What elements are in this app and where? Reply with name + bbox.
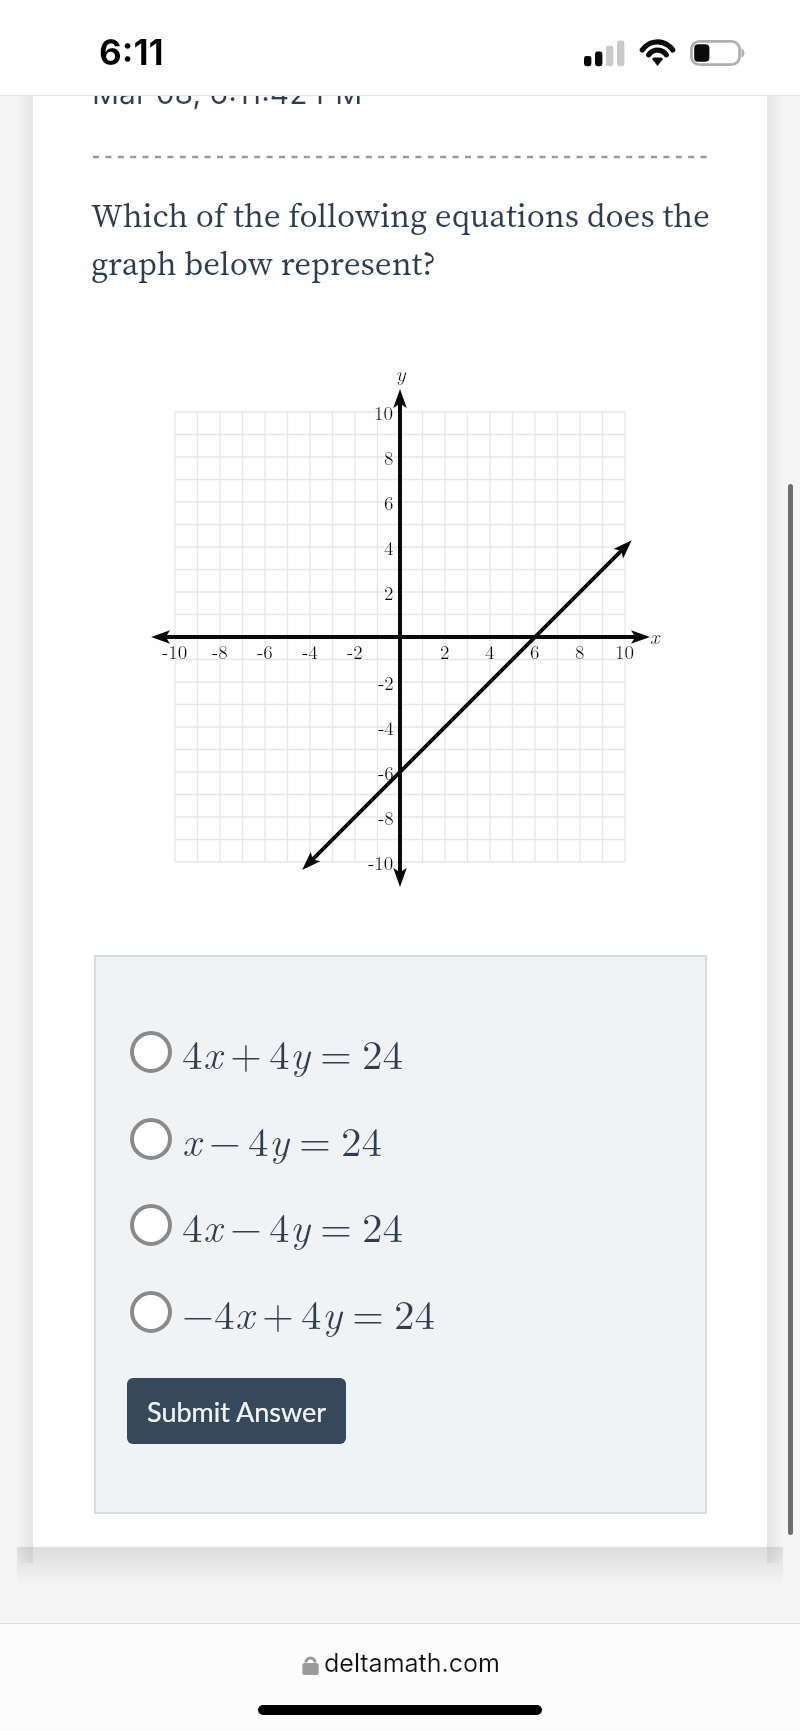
staticText: y — [322, 1283, 342, 1341]
staticText: 4 — [182, 1023, 203, 1081]
staticText: deltamath.com — [324, 1648, 500, 1678]
other: Home indicator — [258, 1705, 542, 1715]
staticText: + — [230, 1023, 262, 1081]
staticText: 4 — [301, 1283, 322, 1341]
staticText: = — [320, 1023, 352, 1081]
button[interactable]: Submit Answer — [127, 1378, 346, 1444]
staticText: = — [320, 1196, 352, 1254]
staticText: Which of the following equations does th… — [91, 193, 723, 286]
staticText: x — [182, 1110, 202, 1168]
button[interactable]: x — [129, 1108, 689, 1170]
staticText: x — [235, 1283, 255, 1341]
staticText: y — [290, 1023, 310, 1081]
button[interactable]: deltamath.com — [300, 1648, 500, 1678]
other: Coordinate plane graph of a line through… — [140, 360, 696, 908]
other: Wi-Fi connected — [640, 40, 676, 66]
staticText: − — [209, 1110, 241, 1168]
other: Cellular signal strength — [584, 40, 626, 67]
staticText: 4 — [214, 1283, 235, 1341]
other: Battery level — [690, 40, 748, 66]
staticText: + — [262, 1283, 294, 1341]
staticText: 24 — [394, 1283, 435, 1341]
staticText: 4 — [248, 1110, 269, 1168]
staticText: Submit Answer — [147, 1395, 327, 1427]
staticText: 24 — [362, 1023, 403, 1081]
staticText: − — [182, 1283, 214, 1341]
staticText: = — [299, 1110, 331, 1168]
staticText: 4 — [269, 1023, 290, 1081]
staticText: − — [230, 1196, 262, 1254]
staticText: = — [352, 1283, 384, 1341]
staticText: 4 — [269, 1196, 290, 1254]
button[interactable]: 4 — [129, 1194, 689, 1256]
staticText: x — [203, 1023, 223, 1081]
button[interactable]: 4 — [129, 1021, 689, 1083]
staticText: Mar 08, 6:11:42 PM — [92, 96, 363, 111]
staticText: x — [203, 1196, 223, 1254]
staticText: 24 — [362, 1196, 403, 1254]
staticText: 6:11 — [99, 31, 164, 73]
staticText: y — [290, 1196, 310, 1254]
button[interactable]: − — [129, 1281, 689, 1343]
staticText: y — [269, 1110, 289, 1168]
staticText: 24 — [341, 1110, 382, 1168]
staticText: 4 — [182, 1196, 203, 1254]
